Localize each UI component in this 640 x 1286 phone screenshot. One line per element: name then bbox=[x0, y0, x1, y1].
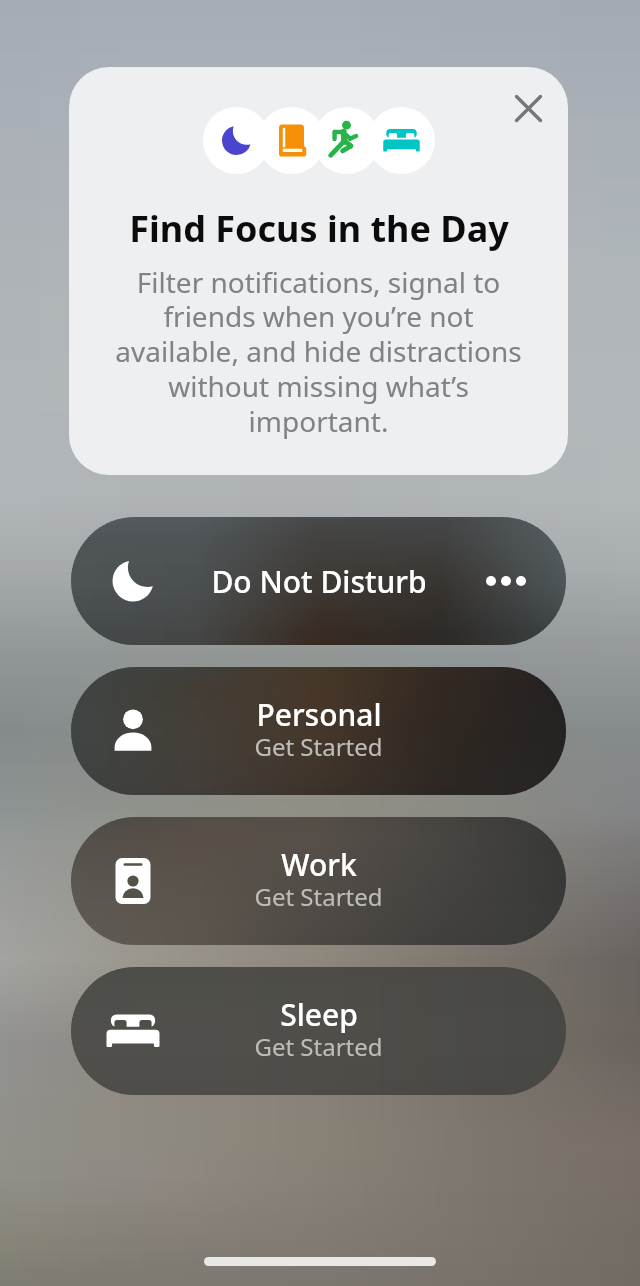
staticText: Do Not Disturb bbox=[211, 561, 427, 602]
staticText: Find Focus in the Day bbox=[129, 204, 509, 253]
staticText: Get Started bbox=[254, 730, 383, 763]
staticText: Sleep bbox=[280, 994, 358, 1035]
staticText: Work bbox=[281, 844, 357, 885]
button[interactable]: Close bbox=[500, 80, 556, 136]
staticText: Get Started bbox=[254, 1030, 383, 1063]
staticText: Filter notifications, signal to friends … bbox=[115, 263, 522, 441]
button[interactable]: Do Not Disturb bbox=[71, 517, 566, 645]
button[interactable]: More options bbox=[474, 549, 538, 613]
button[interactable]: Sleep bbox=[71, 967, 566, 1095]
button[interactable]: Personal bbox=[71, 667, 566, 795]
button[interactable]: Work bbox=[71, 817, 566, 945]
staticText: Personal bbox=[256, 694, 382, 735]
staticText: Get Started bbox=[254, 880, 383, 913]
